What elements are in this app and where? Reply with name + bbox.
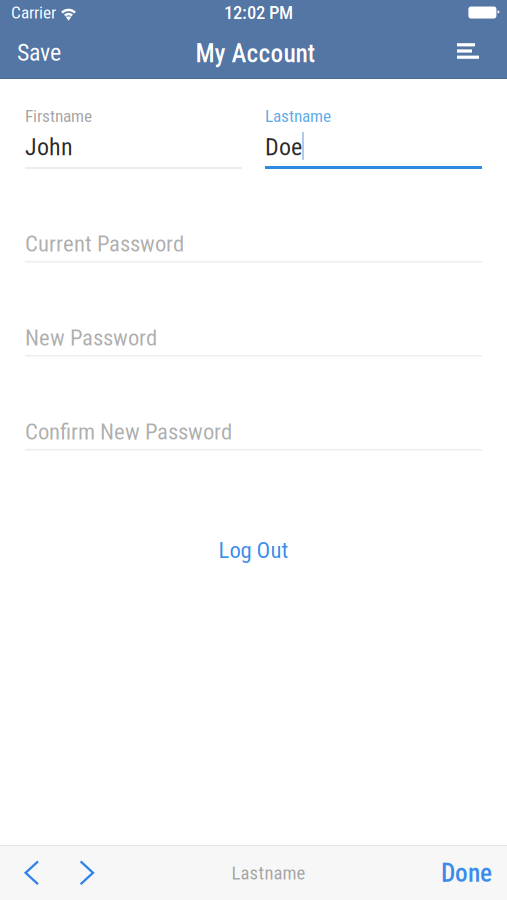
button[interactable]: Save: [0, 27, 75, 78]
staticText: Firstname: [25, 106, 92, 126]
staticText: Done: [441, 858, 492, 888]
staticText: Lastname: [231, 862, 305, 884]
button[interactable]: Menu: [441, 27, 507, 78]
button[interactable]: Done: [421, 846, 507, 900]
staticText: 12:02 PM: [224, 2, 293, 23]
staticText: Log Out: [218, 537, 288, 564]
button[interactable]: Previous field: [0, 846, 64, 900]
staticText: Lastname: [265, 106, 331, 126]
staticText: Confirm New Password: [25, 418, 232, 445]
staticText: Doe: [265, 133, 302, 161]
button[interactable]: Next field: [64, 846, 103, 900]
staticText: Save: [17, 38, 61, 66]
staticText: New Password: [25, 324, 157, 351]
staticText: John: [25, 133, 73, 161]
staticText: Carrier: [11, 2, 56, 23]
staticText: Current Password: [25, 230, 184, 257]
button[interactable]: Log Out: [0, 529, 507, 572]
staticText: My Account: [195, 39, 315, 68]
